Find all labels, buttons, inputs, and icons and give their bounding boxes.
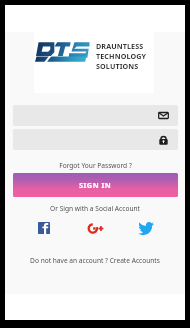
- other: Password: [158, 134, 169, 145]
- staticText: Or Sign with a Social Account: [50, 204, 140, 213]
- button[interactable]: Forgot Your Password ?: [5, 158, 185, 172]
- button[interactable]: SIGN IN: [13, 173, 178, 197]
- button[interactable]: Sign in with Twitter: [138, 220, 154, 236]
- staticText: DRAUNTLESS: [96, 41, 144, 51]
- button[interactable]: Email: [13, 105, 178, 126]
- staticText: SIGN IN: [79, 180, 112, 190]
- staticText: Do not have an account ? Create Accounts: [30, 256, 160, 265]
- staticText: SOLUTIONS: [96, 61, 139, 71]
- button[interactable]: Password: [13, 129, 178, 150]
- button[interactable]: Sign in with Facebook: [36, 220, 52, 236]
- other: Email: [158, 110, 169, 121]
- button[interactable]: Do not have an account ? Create Accounts: [5, 253, 185, 267]
- staticText: TECHNOLOGY: [96, 51, 147, 61]
- button[interactable]: Sign in with Google Plus: [88, 220, 104, 236]
- staticText: Forgot Your Password ?: [59, 161, 132, 170]
